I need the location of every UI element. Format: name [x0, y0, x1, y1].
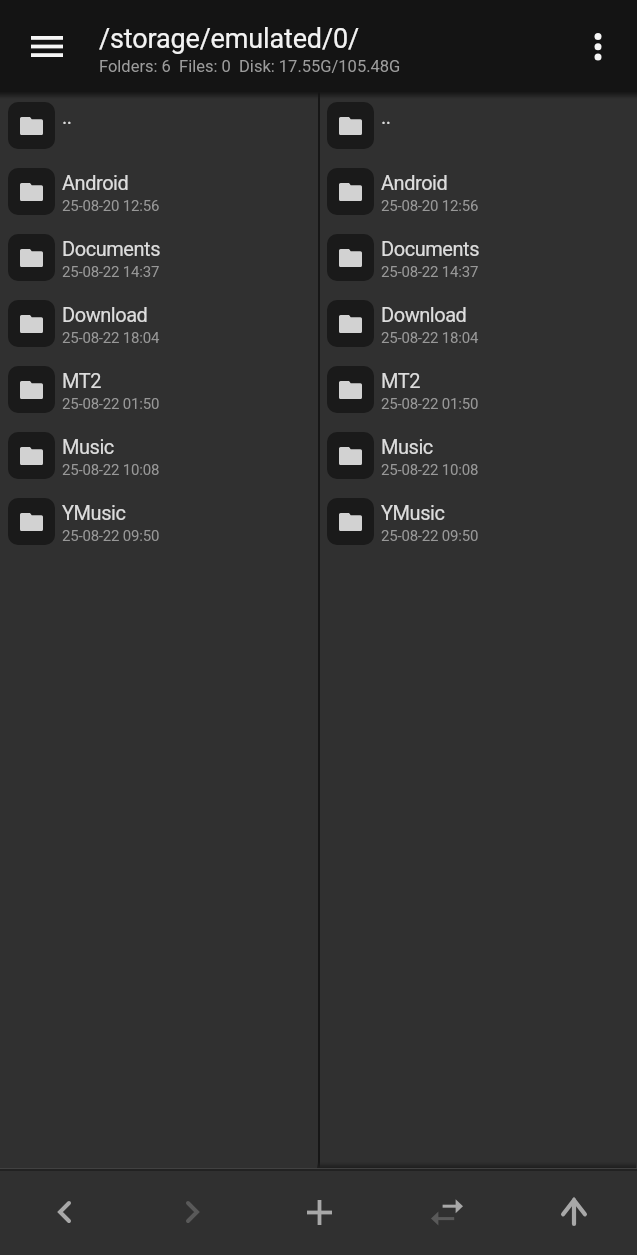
staticText: Documents — [381, 237, 480, 260]
button[interactable]: New folder — [256, 1170, 383, 1254]
button[interactable]: Go up — [510, 1170, 637, 1254]
staticText: 25-08-22 09:50 — [62, 527, 160, 545]
staticText: Android — [62, 171, 129, 194]
staticText: Download — [62, 303, 148, 326]
button[interactable]: Android — [0, 158, 319, 224]
staticText: 25-08-22 01:50 — [381, 395, 479, 413]
button[interactable]: Music — [319, 422, 637, 488]
staticText: 25-08-22 18:04 — [62, 329, 160, 347]
staticText: Download — [381, 303, 467, 326]
button[interactable]: MT2 — [0, 356, 319, 422]
staticText: Music — [62, 435, 114, 458]
button[interactable]: Back — [0, 1170, 128, 1254]
staticText: YMusic — [381, 501, 445, 524]
button[interactable]: YMusic — [0, 488, 319, 554]
button[interactable]: Forward — [128, 1170, 256, 1254]
staticText: .. — [381, 105, 391, 128]
staticText: 25-08-22 14:37 — [381, 263, 479, 281]
staticText: Music — [381, 435, 433, 458]
button[interactable]: MT2 — [319, 356, 637, 422]
staticText: 25-08-22 10:08 — [381, 461, 479, 479]
button[interactable]: Documents — [0, 224, 319, 290]
button[interactable]: Swap panes — [383, 1170, 510, 1254]
staticText: 25-08-22 09:50 — [381, 527, 479, 545]
staticText: .. — [62, 105, 72, 128]
staticText: 25-08-20 12:56 — [381, 197, 479, 215]
staticText: MT2 — [62, 369, 102, 392]
staticText: YMusic — [62, 501, 126, 524]
staticText: /storage/emulated/0/ — [99, 23, 359, 55]
button[interactable]: More options — [567, 0, 637, 92]
button[interactable]: Music — [0, 422, 319, 488]
staticText: 25-08-22 14:37 — [62, 263, 160, 281]
button[interactable]: .. — [319, 92, 637, 158]
button[interactable]: Download — [319, 290, 637, 356]
staticText: Documents — [62, 237, 161, 260]
staticText: Android — [381, 171, 448, 194]
button[interactable]: Download — [0, 290, 319, 356]
button[interactable]: .. — [0, 92, 319, 158]
button[interactable]: YMusic — [319, 488, 637, 554]
staticText: 25-08-22 18:04 — [381, 329, 479, 347]
button[interactable]: Documents — [319, 224, 637, 290]
button[interactable]: Menu — [0, 0, 93, 92]
staticText: 25-08-22 01:50 — [62, 395, 160, 413]
staticText: MT2 — [381, 369, 421, 392]
staticText: 25-08-20 12:56 — [62, 197, 160, 215]
button[interactable]: Android — [319, 158, 637, 224]
staticText: Folders: 6 Files: 0 Disk: 17.55G/105.48G — [99, 57, 401, 76]
staticText: 25-08-22 10:08 — [62, 461, 160, 479]
